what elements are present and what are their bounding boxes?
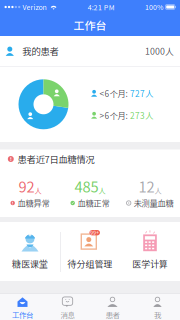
button[interactable]: 我的患者 — [0, 36, 180, 66]
staticText: 人 — [98, 185, 105, 196]
staticText: 273人 — [130, 109, 153, 121]
staticText: 100% — [145, 2, 163, 12]
staticText: 患者 — [105, 309, 119, 320]
staticText: 1000人 — [145, 45, 174, 57]
button[interactable]: 92 — [0, 168, 60, 217]
staticText: >6个月: — [100, 109, 128, 121]
button[interactable]: 糖医课堂 — [0, 222, 60, 281]
staticText: 4:21 PM — [88, 2, 115, 12]
button[interactable]: 我 — [135, 293, 180, 320]
staticText: 血糖正常 — [77, 197, 109, 209]
staticText: 工作台 — [73, 17, 106, 33]
staticText: <6个月: — [100, 87, 128, 99]
staticText: 待分组管理 — [67, 257, 112, 270]
staticText: 我的患者 — [22, 44, 58, 58]
button[interactable]: 99+ — [60, 222, 120, 281]
staticText: 727人 — [130, 87, 153, 99]
staticText: 糖医课堂 — [12, 257, 48, 270]
staticText: 99+ — [90, 229, 99, 236]
staticText: 人 — [154, 185, 161, 196]
button[interactable]: 医学计算 — [120, 222, 180, 281]
staticText: 92 — [18, 175, 34, 197]
button[interactable]: 患者 — [90, 293, 135, 320]
staticText: 人 — [34, 185, 41, 196]
button[interactable]: 消息 — [45, 293, 90, 320]
staticText: Verizon — [23, 2, 47, 12]
button[interactable]: 工作台 — [0, 293, 45, 320]
staticText: 我 — [154, 309, 161, 320]
staticText: 485 — [74, 175, 98, 197]
staticText: 12 — [138, 175, 154, 197]
staticText: 医学计算 — [132, 257, 168, 270]
staticText: 血糖异常 — [17, 197, 49, 209]
staticText: 工作台 — [12, 309, 33, 320]
button[interactable]: 485 — [60, 168, 120, 217]
button[interactable]: 12 — [120, 168, 180, 217]
staticText: 未测量血糖 — [133, 197, 173, 209]
staticText: 消息 — [60, 309, 74, 320]
staticText: 患者近7日血糖情况 — [17, 152, 94, 166]
